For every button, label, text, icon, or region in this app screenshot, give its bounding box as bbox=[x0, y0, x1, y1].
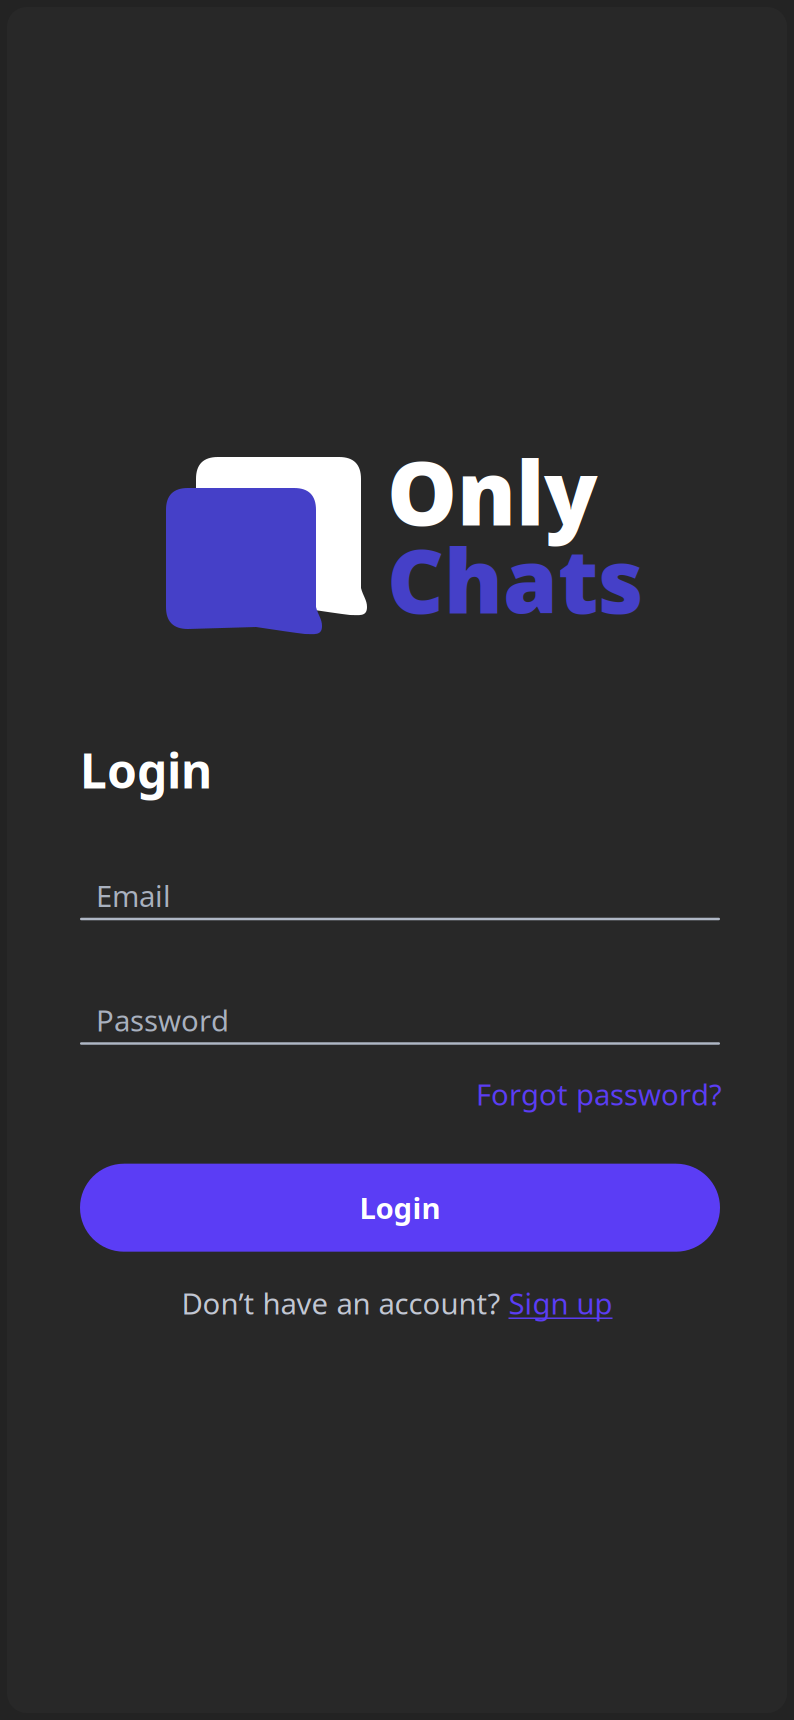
staticText: Login bbox=[359, 1188, 440, 1227]
button[interactable]: Login bbox=[80, 1164, 720, 1252]
staticText: Email bbox=[96, 876, 171, 915]
staticText: Forgot password? bbox=[476, 1075, 722, 1114]
button[interactable]: Forgot password? bbox=[476, 1075, 722, 1114]
staticText: Password bbox=[96, 1001, 229, 1040]
staticText: Login bbox=[80, 738, 212, 802]
button[interactable]: Don’t have an account? bbox=[181, 1284, 612, 1323]
staticText: Don’t have an account? bbox=[181, 1284, 508, 1323]
staticText: Only bbox=[387, 433, 598, 550]
staticText: Chats bbox=[387, 521, 643, 638]
staticText: Sign up bbox=[508, 1284, 612, 1323]
